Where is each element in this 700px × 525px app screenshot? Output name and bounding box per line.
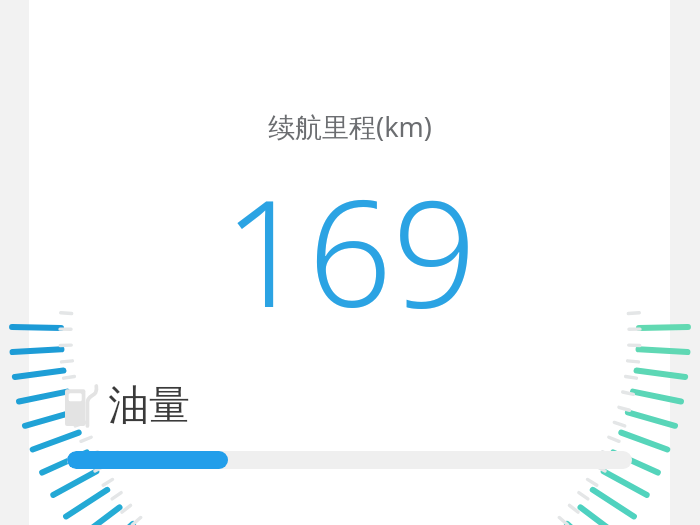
- staticText: 169: [223, 149, 477, 351]
- button[interactable]: Fuel level: [65, 380, 190, 432]
- staticText: 续航里程(km): [268, 108, 432, 145]
- button[interactable]: [67, 451, 632, 469]
- staticText: 油量: [108, 380, 190, 432]
- other: Fuel level: [65, 386, 99, 426]
